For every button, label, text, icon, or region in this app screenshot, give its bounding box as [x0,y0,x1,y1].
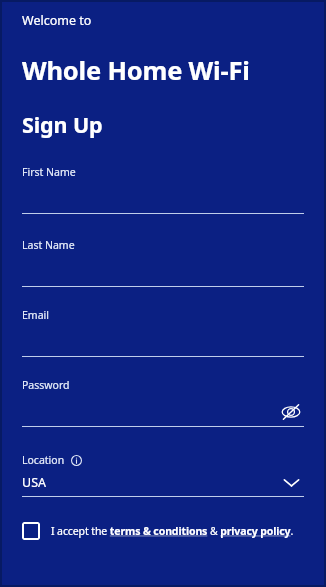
staticText: Last Name [22,238,75,252]
staticText: Welcome to [22,12,92,29]
button[interactable]: Show password [278,399,304,425]
staticText: Whole Home Wi-Fi [22,53,250,88]
other: Accept terms checkbox [22,522,40,540]
staticText: Sign Up [22,110,103,139]
button[interactable]: Open location list [278,469,304,495]
button[interactable]: Accept terms checkbox [22,522,304,540]
staticText: Location [22,453,65,467]
button[interactable]: Last Name [22,214,304,287]
staticText: Password [22,378,70,392]
staticText: USA [22,474,278,491]
button[interactable]: Location [22,453,304,497]
staticText: Email [22,308,49,322]
staticText: First Name [22,165,76,179]
button[interactable]: Password [22,357,304,427]
button[interactable]: Location info [70,454,83,467]
button[interactable]: Email [22,287,304,357]
button[interactable]: First Name [22,139,304,214]
staticText: I accept the terms & conditions & privac… [51,524,294,538]
